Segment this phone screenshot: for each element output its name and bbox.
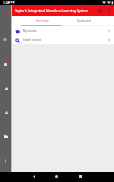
staticText: Search courses — [23, 38, 107, 42]
staticText: Site home — [36, 19, 49, 23]
staticText: 1:34 — [3, 1, 10, 5]
button[interactable]: Apps — [5, 87, 8, 90]
button[interactable]: Home — [51, 172, 61, 180]
button[interactable]: Search — [96, 7, 103, 14]
staticText: Taylor's Integrated Moodle e-Learning Sy… — [15, 8, 96, 13]
button[interactable]: Handle — [5, 159, 6, 163]
button[interactable]: Notifications — [4, 63, 7, 66]
button[interactable]: App — [3, 38, 7, 41]
button[interactable]: Badge — [6, 59, 10, 62]
button[interactable]: Moodle — [5, 14, 8, 18]
button[interactable]: Back — [29, 172, 39, 180]
button[interactable]: More options — [105, 7, 112, 14]
staticText: Dashboard — [77, 19, 91, 23]
button[interactable]: Recent apps — [75, 172, 85, 180]
button[interactable]: Site home — [22, 16, 63, 26]
button[interactable]: Files — [5, 111, 8, 114]
button[interactable]: Folder — [4, 135, 8, 138]
button[interactable]: My courses — [12, 26, 114, 35]
staticText: My courses — [23, 29, 107, 33]
button[interactable]: Dashboard — [63, 16, 105, 26]
button[interactable]: Search courses — [12, 35, 114, 44]
